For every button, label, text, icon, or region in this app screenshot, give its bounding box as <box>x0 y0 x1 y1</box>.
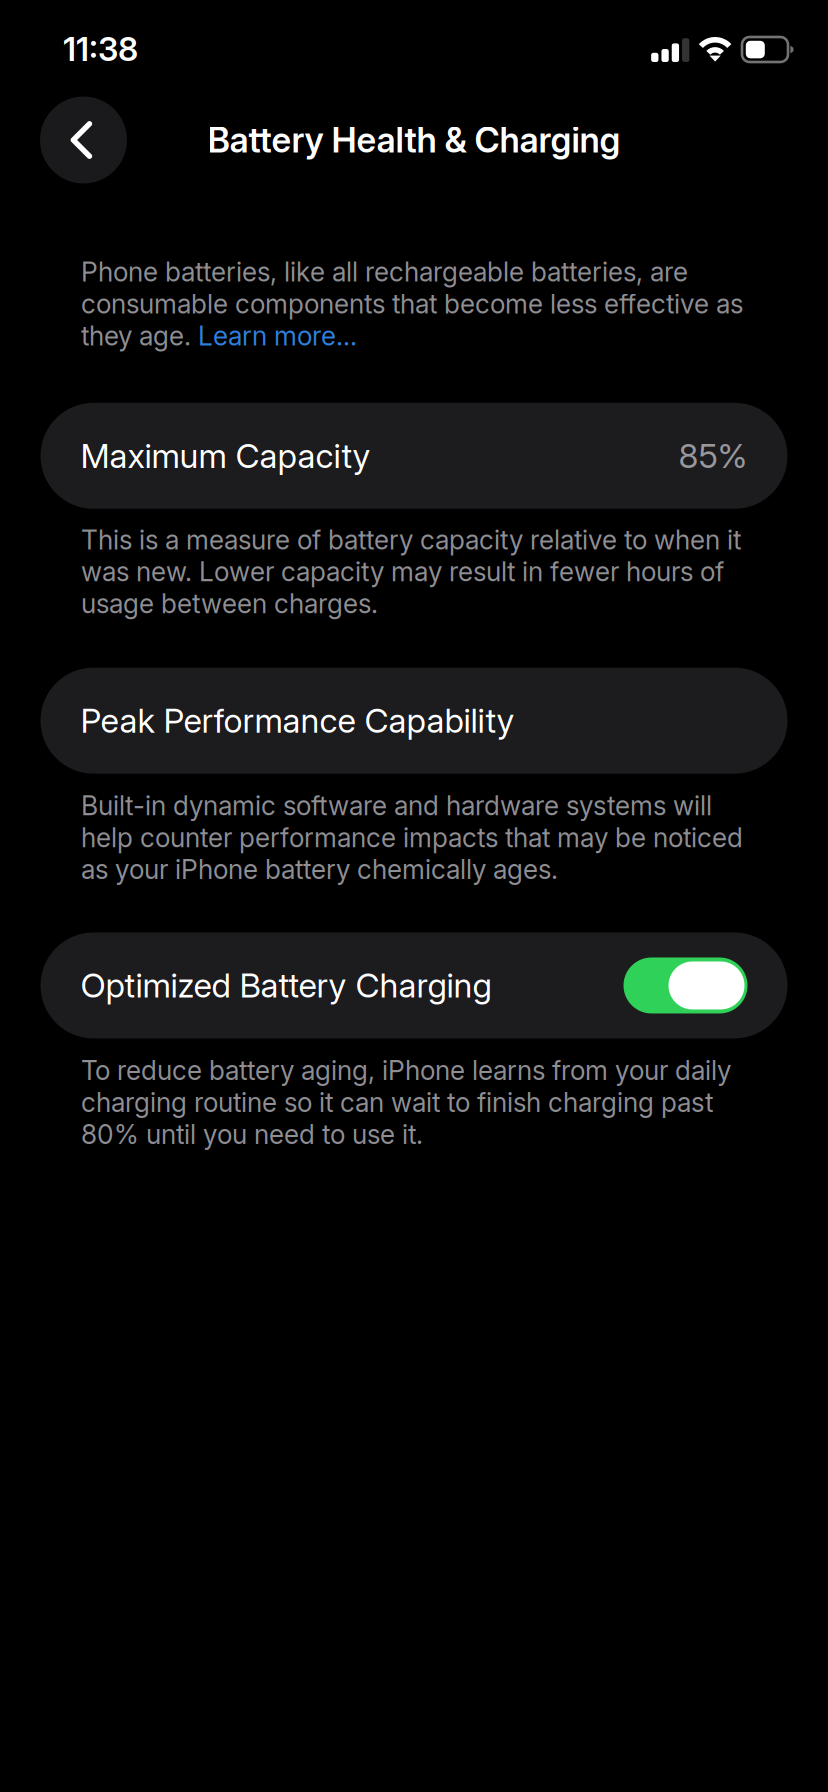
staticText: Peak Performance Capability <box>80 700 514 741</box>
staticText: Battery Health & Charging <box>207 119 620 161</box>
button[interactable]: Optimized Battery Charging <box>0 932 828 1038</box>
staticText: 11:38 <box>63 29 138 69</box>
button[interactable]: Maximum Capacity <box>0 403 828 509</box>
button[interactable]: Peak Performance Capability <box>0 668 828 774</box>
staticText: Built-in dynamic software and hardware s… <box>81 790 743 885</box>
staticText: Phone batteries, like all rechargeable b… <box>81 256 743 352</box>
staticText: Optimized Battery Charging <box>80 965 491 1006</box>
staticText: Maximum Capacity <box>80 436 370 476</box>
staticText: To reduce battery aging, iPhone learns f… <box>81 1054 731 1150</box>
button[interactable]: Back <box>40 96 127 183</box>
staticText: 85% <box>678 436 747 476</box>
staticText: This is a measure of battery capacity re… <box>81 524 741 620</box>
